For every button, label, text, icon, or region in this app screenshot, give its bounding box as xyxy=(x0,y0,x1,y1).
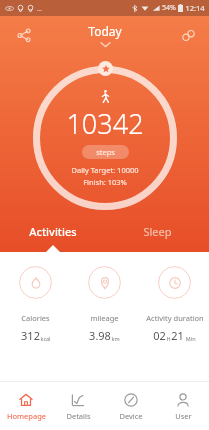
staticText: Finish: 103% xyxy=(83,177,127,187)
button[interactable]: Activity duration xyxy=(140,266,209,343)
button[interactable]: Details xyxy=(52,388,104,425)
staticText: ... xyxy=(37,5,42,13)
staticText: km xyxy=(111,335,120,342)
staticText: 312 xyxy=(21,328,40,343)
staticText: User xyxy=(175,411,192,421)
button[interactable]: mileage xyxy=(70,266,139,343)
staticText: 3.98 xyxy=(89,328,111,343)
staticText: mileage xyxy=(90,313,119,323)
button[interactable]: Today xyxy=(88,23,122,47)
button[interactable]: Homepage xyxy=(0,388,52,425)
staticText: 02 xyxy=(153,328,166,343)
button[interactable]: Activities xyxy=(1,218,105,244)
button[interactable]: Connect device xyxy=(172,19,204,51)
staticText: Activity duration xyxy=(146,313,204,323)
staticText: Details xyxy=(66,411,91,421)
staticText: Min xyxy=(184,335,196,342)
staticText: 12:14 xyxy=(185,3,205,13)
staticText: Calories xyxy=(21,313,50,323)
button[interactable]: User xyxy=(157,388,209,425)
button[interactable]: Sleep xyxy=(105,218,209,244)
button[interactable]: Achievements xyxy=(98,61,113,76)
staticText: steps xyxy=(96,147,115,157)
staticText: 21 xyxy=(171,328,184,343)
staticText: Activities xyxy=(29,224,77,239)
button[interactable]: Calories xyxy=(1,266,70,343)
staticText: H xyxy=(166,335,171,342)
staticText: 54% xyxy=(162,3,176,13)
button[interactable]: Share xyxy=(8,19,40,51)
staticText: 10342 xyxy=(66,105,144,142)
button[interactable]: Device xyxy=(105,388,157,425)
staticText: Daily Target: 10000 xyxy=(71,165,139,175)
staticText: Homepage xyxy=(7,411,46,421)
staticText: Sleep xyxy=(143,224,172,239)
staticText: Today xyxy=(88,23,122,39)
staticText: Device xyxy=(119,411,143,421)
staticText: kcal xyxy=(40,335,51,342)
